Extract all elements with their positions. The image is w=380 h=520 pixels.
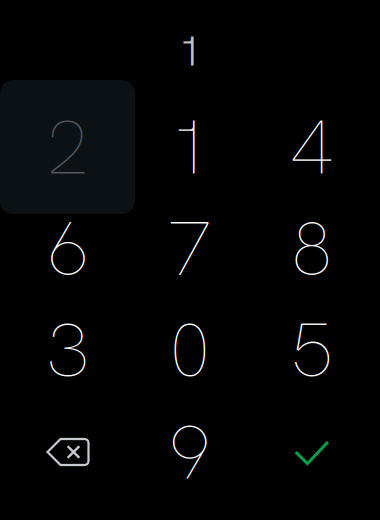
button[interactable]: 9: [129, 401, 251, 502]
button[interactable]: 6: [7, 198, 129, 299]
button[interactable]: 1: [129, 96, 251, 197]
staticText: 4: [290, 97, 333, 196]
staticText: 3: [47, 300, 89, 399]
button[interactable]: Confirm: [251, 401, 373, 502]
button[interactable]: Delete: [7, 401, 129, 502]
staticText: 7: [168, 199, 211, 298]
staticText: 1: [178, 24, 201, 78]
staticText: 6: [46, 199, 89, 298]
button[interactable]: 4: [251, 96, 373, 197]
staticText: 8: [290, 199, 333, 298]
staticText: 1: [168, 97, 211, 196]
button[interactable]: 7: [129, 198, 251, 299]
staticText: 9: [168, 402, 211, 501]
staticText: 2: [46, 97, 89, 196]
button[interactable]: 5: [251, 299, 373, 400]
button[interactable]: 0: [129, 299, 251, 400]
button[interactable]: 2: [7, 96, 129, 197]
button[interactable]: 3: [7, 299, 129, 400]
button[interactable]: 8: [251, 198, 373, 299]
staticText: 5: [290, 300, 333, 399]
staticText: 0: [168, 300, 211, 399]
